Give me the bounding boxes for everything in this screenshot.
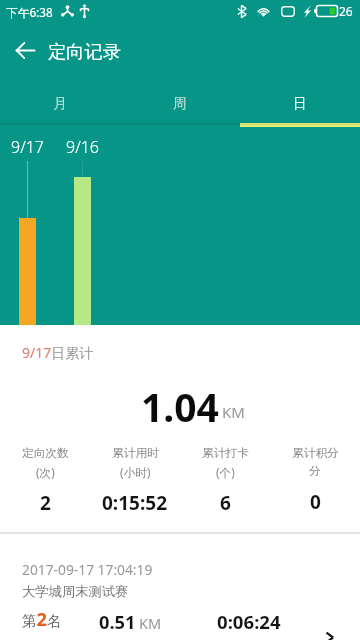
staticText: (小时) [120,464,151,480]
other: Open detail [318,626,340,640]
staticText: 0 [310,489,321,515]
staticText: 下午6:38 [6,4,53,20]
staticText: (次) [36,464,55,480]
staticText: KM [222,402,245,422]
staticText: 2 [40,490,51,516]
staticText: 大学城周末测试赛 [22,583,129,600]
staticText: 0.51 [99,609,136,634]
staticText: 26 [339,3,353,19]
staticText: 累计用时 [112,446,159,461]
staticText: 周 [173,95,187,112]
staticText: 6 [220,490,231,516]
button[interactable]: 日 [240,81,360,125]
staticText: 定向次数 [22,446,69,461]
staticText: KM [139,613,162,633]
staticText: 日 [293,95,307,112]
staticText: 定向记录 [48,40,122,63]
staticText: 第2名 [22,606,62,631]
staticText: 累计积分 [292,446,339,461]
staticText: 1.04 [141,380,219,433]
staticText: 2017-09-17 17:04:19 [22,560,153,579]
button[interactable]: 周 [120,81,240,125]
staticText: 0:15:52 [102,490,168,516]
button[interactable]: Back [11,36,39,64]
staticText: 9/17 [11,136,44,158]
staticText: 0:06:24 [217,609,281,634]
staticText: 9/16 [66,136,99,158]
button[interactable]: 2017-09-17 17:04:19 [0,534,360,640]
staticText: 累计打卡 [202,446,249,461]
staticText: (个) [216,464,235,480]
staticText: 分 [309,464,321,479]
staticText: 9/17日累计 [22,343,94,362]
staticText: 月 [53,95,67,112]
button[interactable]: 月 [0,81,120,125]
